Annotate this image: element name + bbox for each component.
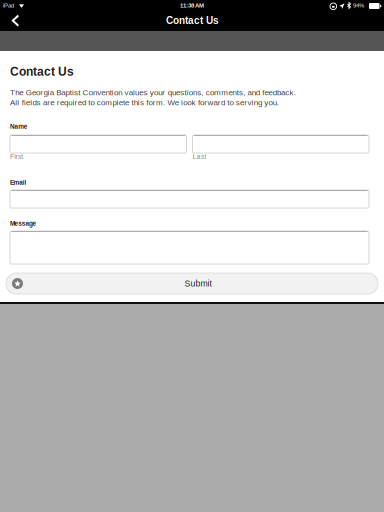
staticText: All fields are required to complete this…: [10, 98, 279, 107]
staticText: Submit: [184, 279, 211, 288]
staticText: The Georgia Baptist Convention values yo…: [10, 88, 296, 97]
staticText: Message: [10, 220, 37, 227]
staticText: 11:38 AM: [180, 2, 204, 9]
staticText: Contact Us: [166, 15, 219, 26]
staticText: Name: [10, 123, 28, 130]
staticText: First: [10, 153, 23, 160]
button[interactable]: Back: [0, 13, 32, 31]
staticText: Email: [10, 179, 26, 186]
staticText: Last: [192, 153, 206, 160]
staticText: 94%: [353, 2, 364, 9]
button[interactable]: Submit: [6, 273, 378, 294]
staticText: Contact Us: [10, 65, 74, 78]
staticText: iPad: [3, 2, 14, 9]
